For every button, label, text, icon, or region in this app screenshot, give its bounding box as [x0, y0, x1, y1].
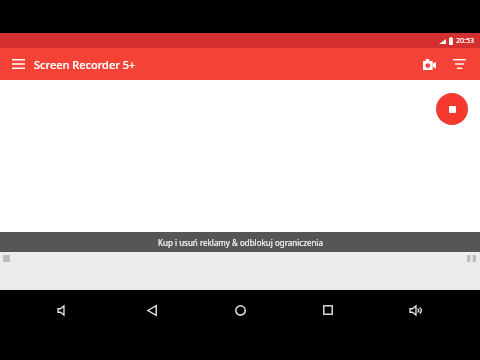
button[interactable]: Back [135, 293, 169, 327]
button[interactable]: Camera [416, 51, 442, 77]
button[interactable]: Sort [446, 51, 472, 77]
staticText: 20:53 [456, 36, 474, 46]
button[interactable]: Stop recording [436, 93, 468, 125]
staticText: Kup i usuń reklamy & odblokuj ograniczen… [158, 237, 323, 248]
button[interactable]: Volume down [47, 293, 81, 327]
button[interactable]: Home [223, 293, 257, 327]
staticText: Screen Recorder 5+ [34, 57, 136, 72]
button[interactable]: Recents [311, 293, 345, 327]
button[interactable]: Kup i usuń reklamy & odblokuj ograniczen… [0, 232, 480, 252]
button[interactable]: Open navigation drawer [6, 52, 30, 76]
button[interactable]: Volume up [399, 293, 433, 327]
